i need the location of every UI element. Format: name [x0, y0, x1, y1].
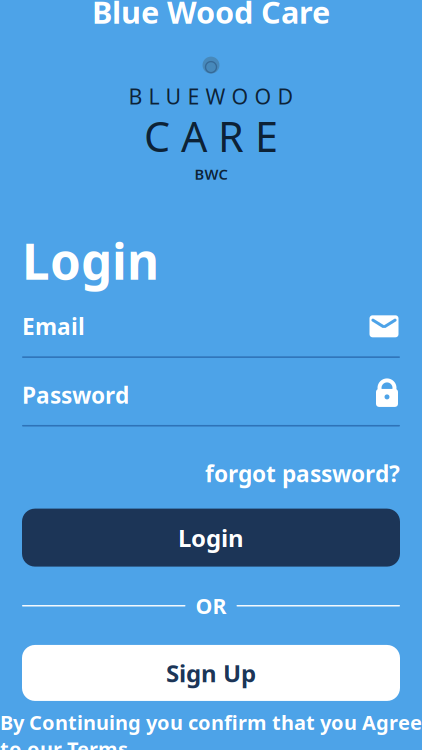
staticText: B L U E W O O D: [128, 82, 293, 110]
staticText: forgot password?: [205, 458, 400, 489]
staticText: Email: [22, 311, 85, 341]
staticText: Sign Up: [166, 657, 256, 689]
staticText: Login: [22, 228, 159, 293]
button[interactable]: Login: [22, 509, 400, 567]
staticText: By Continuing you confirm that you Agree…: [0, 709, 422, 750]
staticText: BWC: [194, 164, 227, 184]
staticText: Password: [22, 380, 129, 410]
staticText: OR: [195, 592, 226, 620]
button[interactable]: forgot password?: [0, 452, 422, 495]
staticText: Login: [178, 522, 244, 554]
staticText: C A R E: [144, 108, 278, 163]
staticText: Blue Wood Care: [92, 0, 330, 32]
button[interactable]: Sign Up: [22, 645, 400, 701]
